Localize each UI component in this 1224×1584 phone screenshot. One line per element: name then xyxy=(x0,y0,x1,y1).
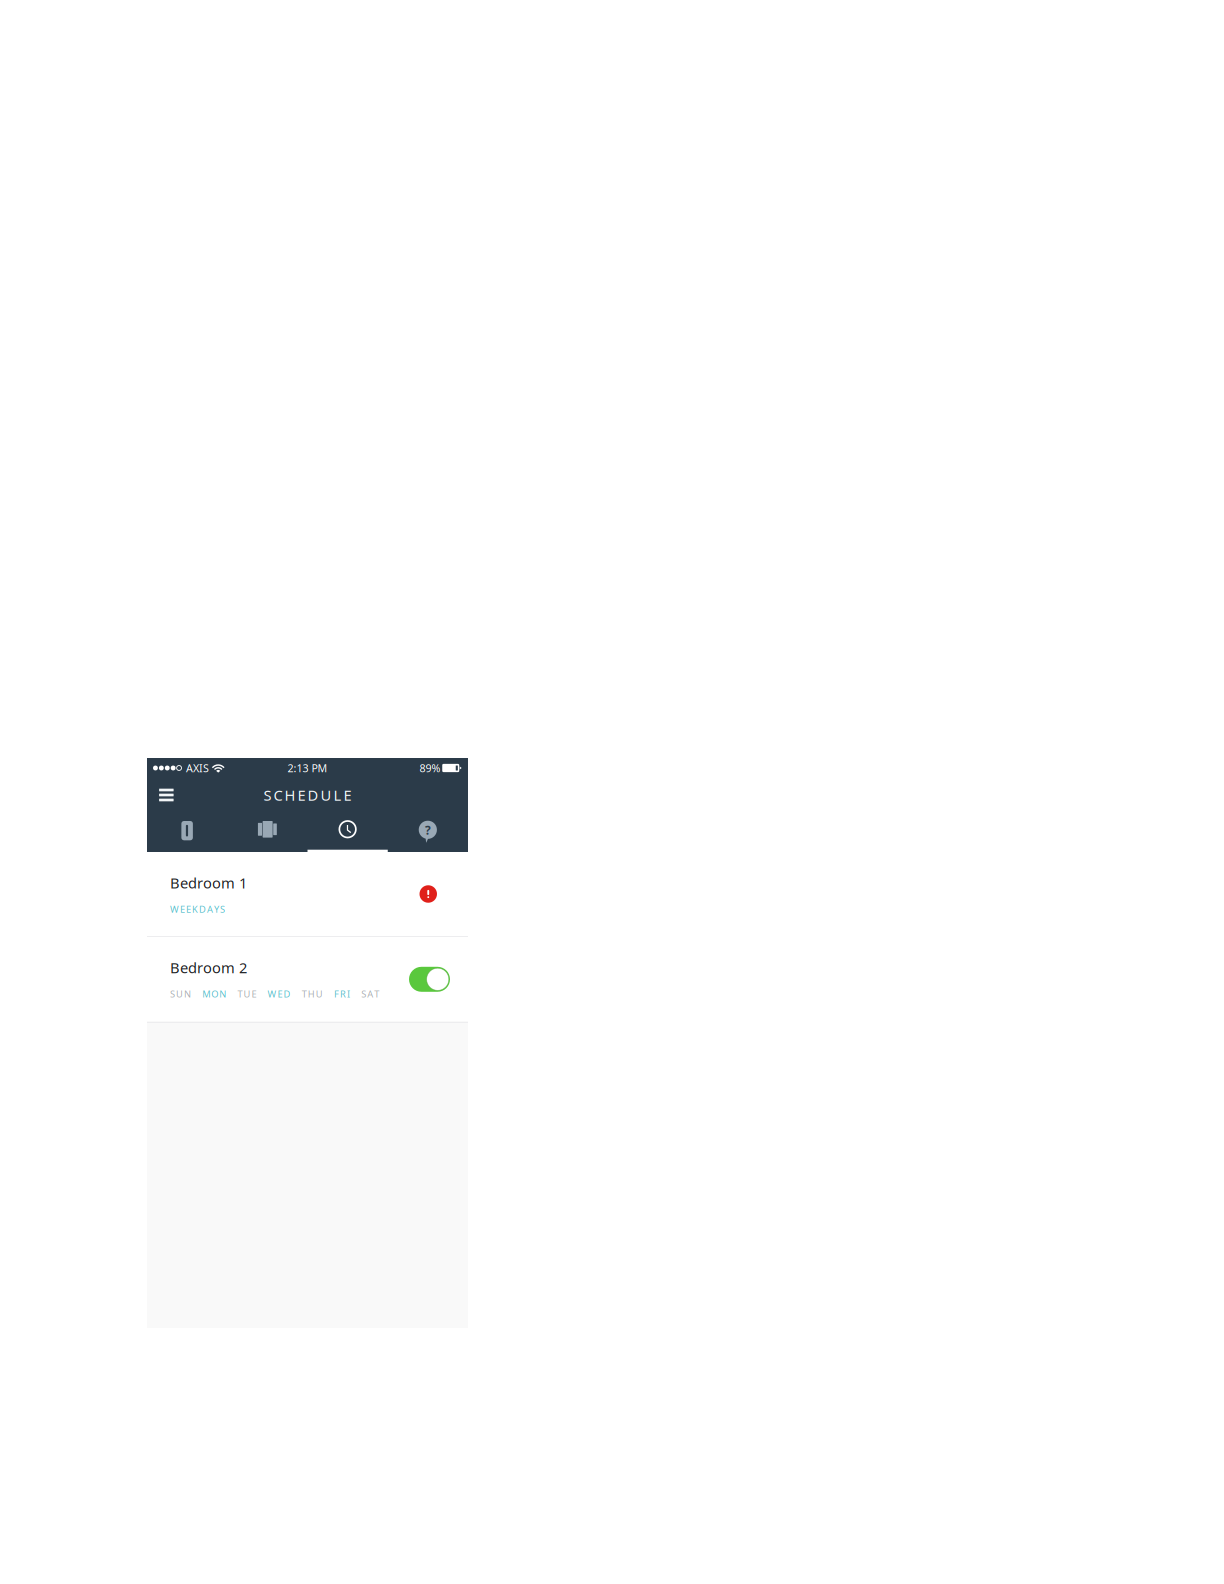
staticText: 89% xyxy=(419,761,440,775)
button[interactable]: Menu xyxy=(147,778,186,812)
staticText: W E D xyxy=(268,988,291,1000)
button[interactable]: Scenes xyxy=(227,812,307,852)
staticText: T U E xyxy=(237,988,256,1000)
staticText: Bedroom 1 xyxy=(170,873,247,892)
staticText: S U N xyxy=(170,988,191,1000)
staticText: M O N xyxy=(202,988,226,1000)
button[interactable]: Schedule xyxy=(307,812,388,852)
staticText: S A T xyxy=(361,988,379,1000)
staticText: Bedroom 2 xyxy=(170,958,247,977)
button[interactable]: Devices xyxy=(147,812,227,852)
button[interactable]: Bedroom 1 xyxy=(147,852,468,936)
staticText: S C H E D U L E xyxy=(263,785,351,805)
staticText: 2:13 PM xyxy=(287,761,327,775)
staticText: F R I xyxy=(334,988,350,1000)
button[interactable]: Bedroom 2 xyxy=(147,937,468,1022)
staticText: W E E K D A Y S xyxy=(170,903,225,915)
staticText: ? xyxy=(425,822,431,838)
staticText: T H U xyxy=(302,988,323,1000)
staticText: AXIS xyxy=(186,761,209,775)
button[interactable]: Help xyxy=(388,812,468,852)
